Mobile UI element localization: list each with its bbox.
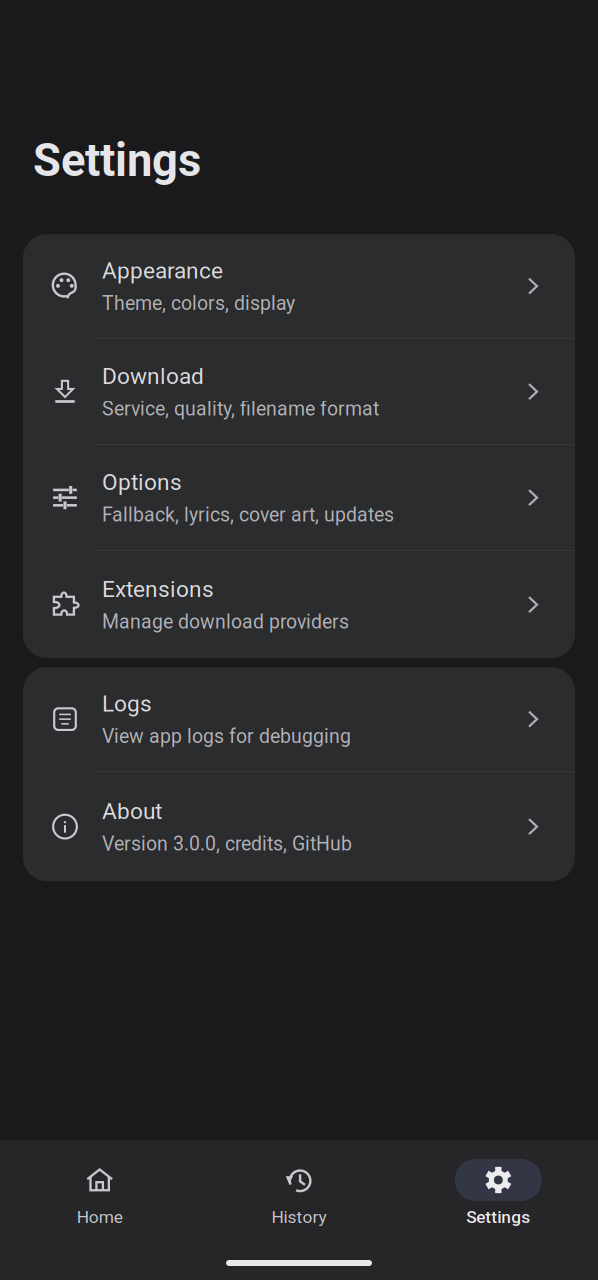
button[interactable]: History [199, 1159, 399, 1227]
staticText: Download [102, 363, 204, 389]
staticText: Service, quality, filename format [102, 397, 379, 420]
staticText: Extensions [102, 576, 214, 602]
staticText: Home [77, 1207, 123, 1227]
button[interactable]: Appearance [23, 234, 575, 339]
button[interactable]: Home [0, 1159, 199, 1227]
staticText: View app logs for debugging [102, 725, 351, 748]
button[interactable]: Logs [23, 667, 575, 772]
staticText: Fallback, lyrics, cover art, updates [102, 503, 394, 526]
button[interactable]: Options [23, 445, 575, 551]
staticText: Settings [466, 1207, 530, 1227]
button[interactable]: Settings [399, 1159, 598, 1227]
staticText: Theme, colors, display [102, 292, 295, 315]
staticText: Settings [33, 134, 201, 187]
staticText: Appearance [102, 257, 223, 284]
staticText: History [271, 1207, 326, 1227]
staticText: Version 3.0.0, credits, GitHub [102, 832, 352, 855]
button[interactable]: Download [23, 339, 575, 445]
staticText: Options [102, 469, 182, 495]
staticText: Logs [102, 690, 152, 717]
button[interactable]: Extensions [23, 551, 575, 658]
staticText: About [102, 798, 162, 824]
button[interactable]: About [23, 772, 575, 881]
staticText: Manage download providers [102, 610, 349, 633]
